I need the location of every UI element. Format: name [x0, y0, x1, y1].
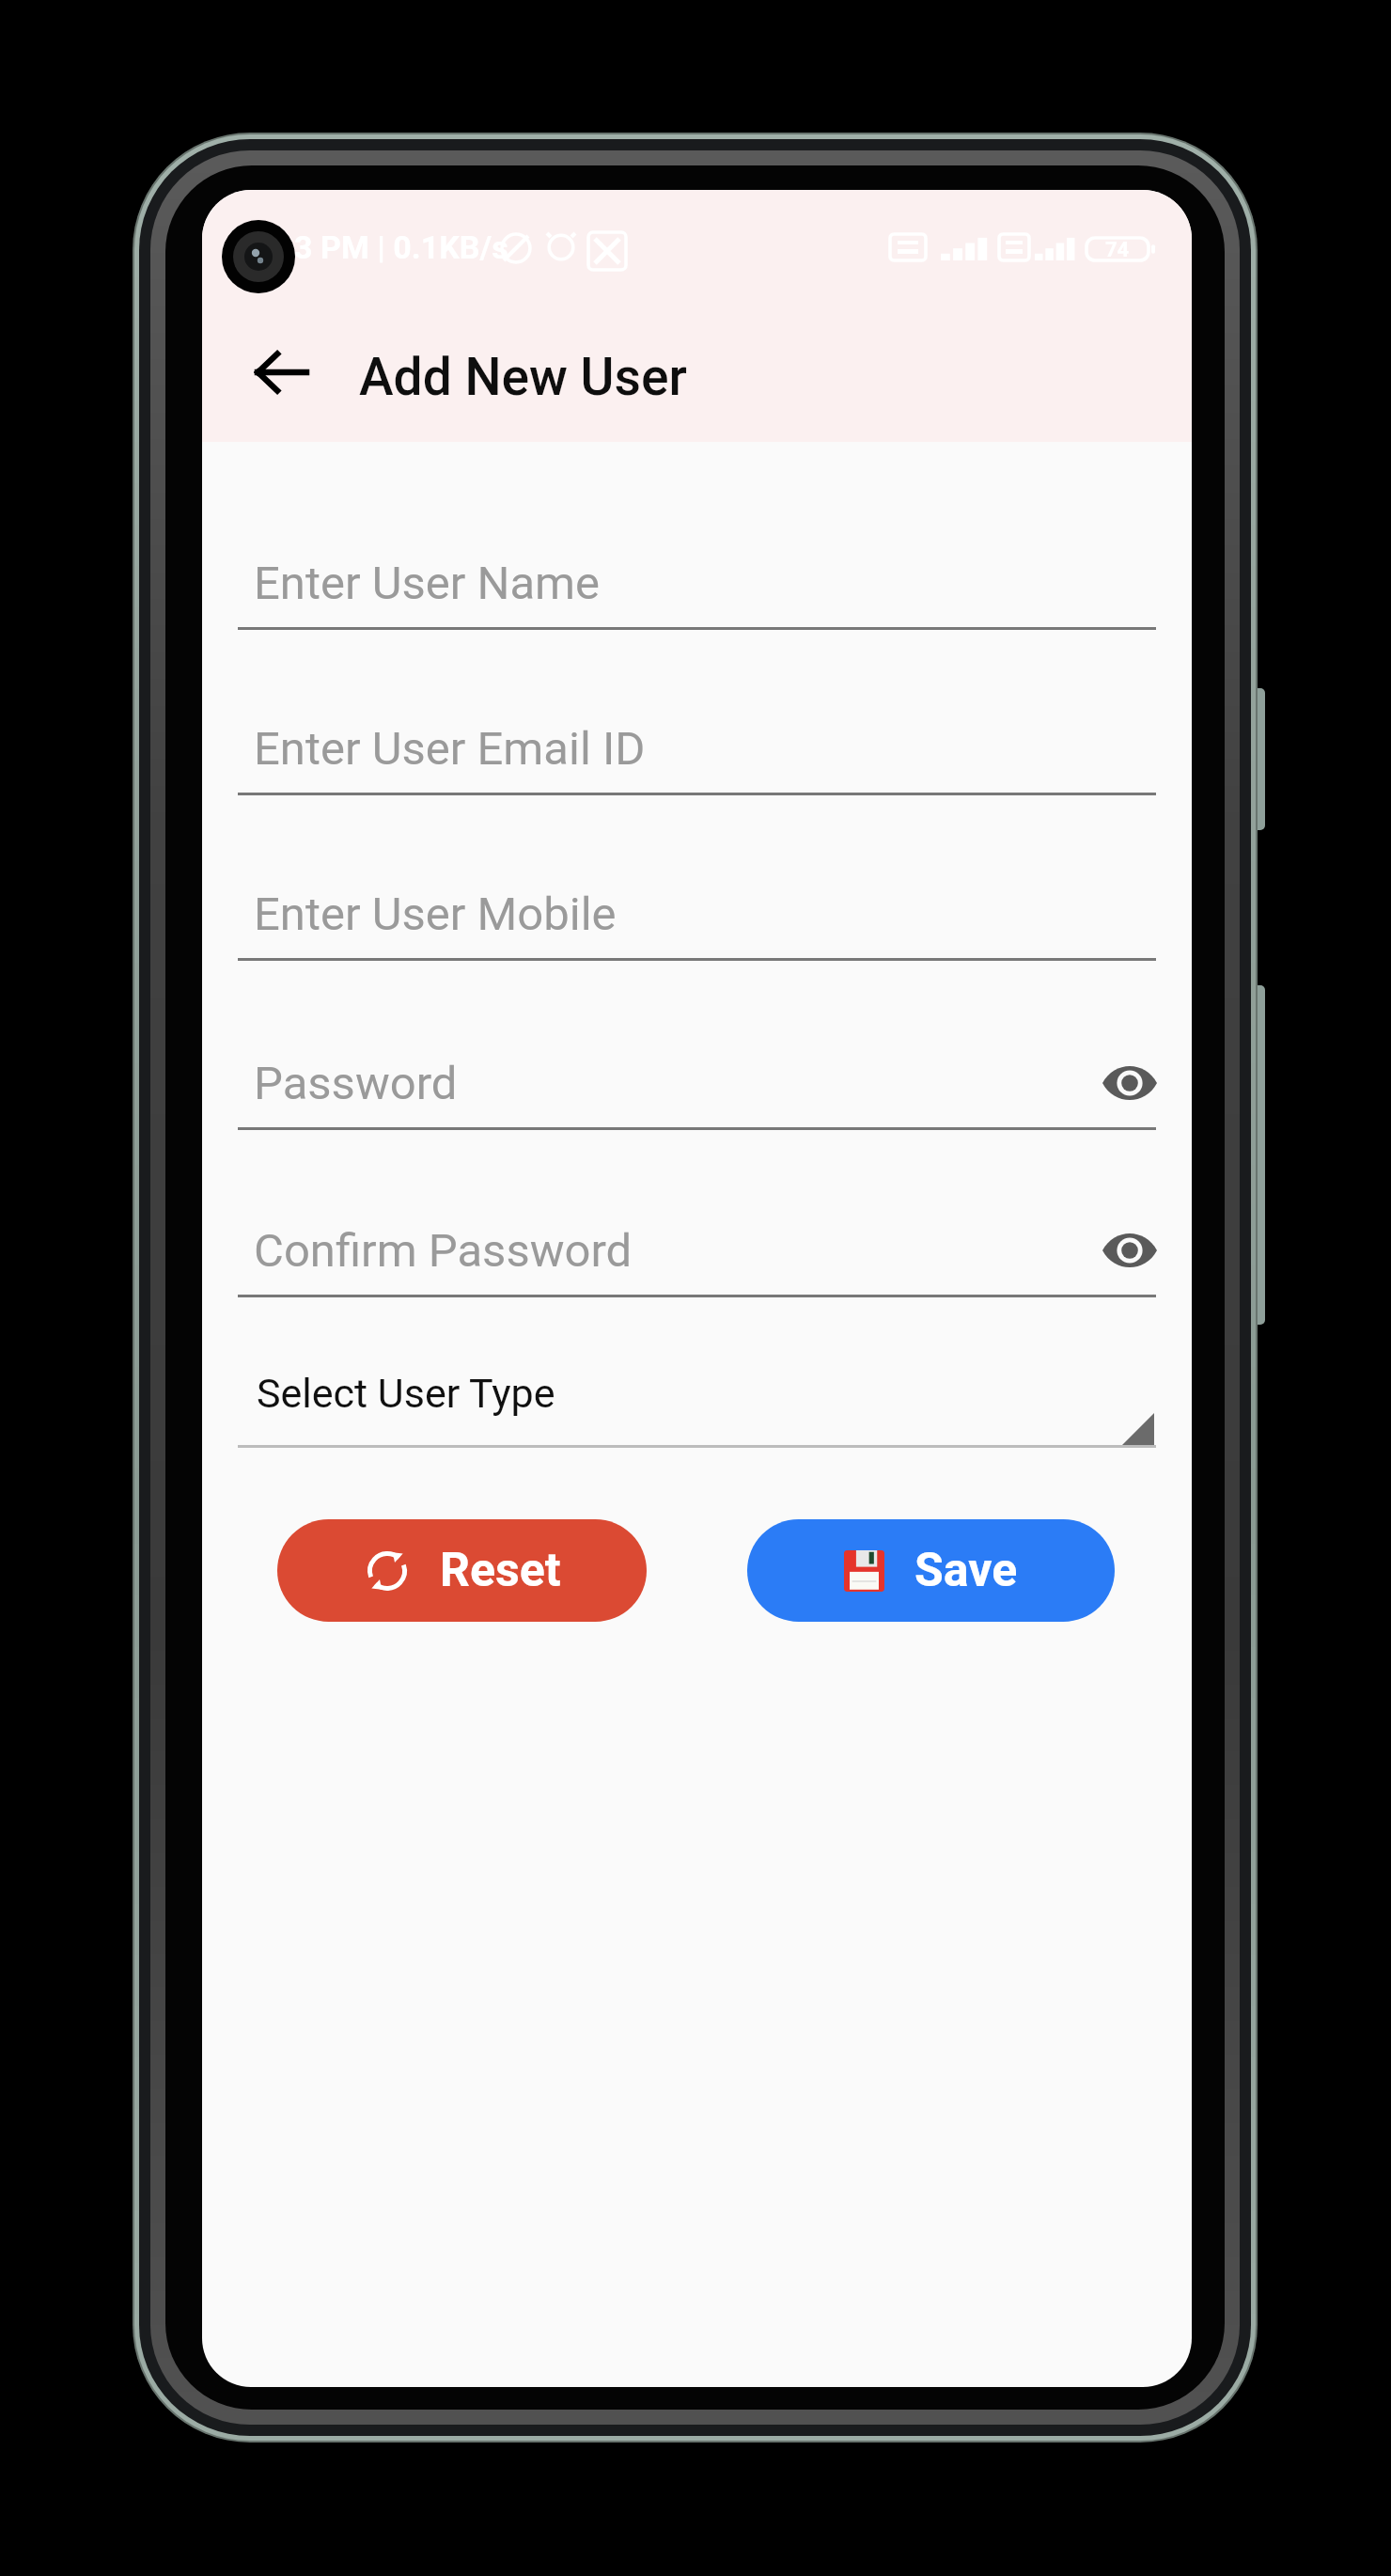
staticText: Add New User	[359, 347, 687, 407]
button[interactable]: Back	[247, 338, 315, 406]
staticText: Confirm Password	[254, 1224, 633, 1278]
button[interactable]: Password	[202, 961, 1192, 1130]
button[interactable]: Enter User Email ID	[202, 630, 1192, 795]
staticText: Select User Type	[257, 1370, 555, 1417]
staticText: Password	[254, 1057, 458, 1110]
button[interactable]: Enter User Mobile	[202, 795, 1192, 961]
staticText: Enter User Mobile	[254, 887, 617, 941]
button[interactable]: Toggle password visibility	[1092, 1213, 1167, 1288]
button[interactable]: Toggle password visibility	[1092, 1045, 1167, 1121]
button[interactable]: Confirm Password	[202, 1130, 1192, 1297]
staticText: Enter User Name	[254, 557, 601, 610]
button[interactable]: Reset	[277, 1519, 647, 1622]
staticText: Save	[914, 1543, 1018, 1598]
staticText: Enter User Email ID	[254, 722, 646, 776]
staticText: 74	[1105, 238, 1130, 260]
button[interactable]: Enter User Name	[202, 464, 1192, 630]
button[interactable]: Select User Type	[202, 1297, 1192, 1448]
button[interactable]: Save	[747, 1519, 1115, 1622]
staticText: 3 PM | 0.1KB/s	[294, 228, 508, 266]
staticText: Reset	[440, 1543, 561, 1598]
